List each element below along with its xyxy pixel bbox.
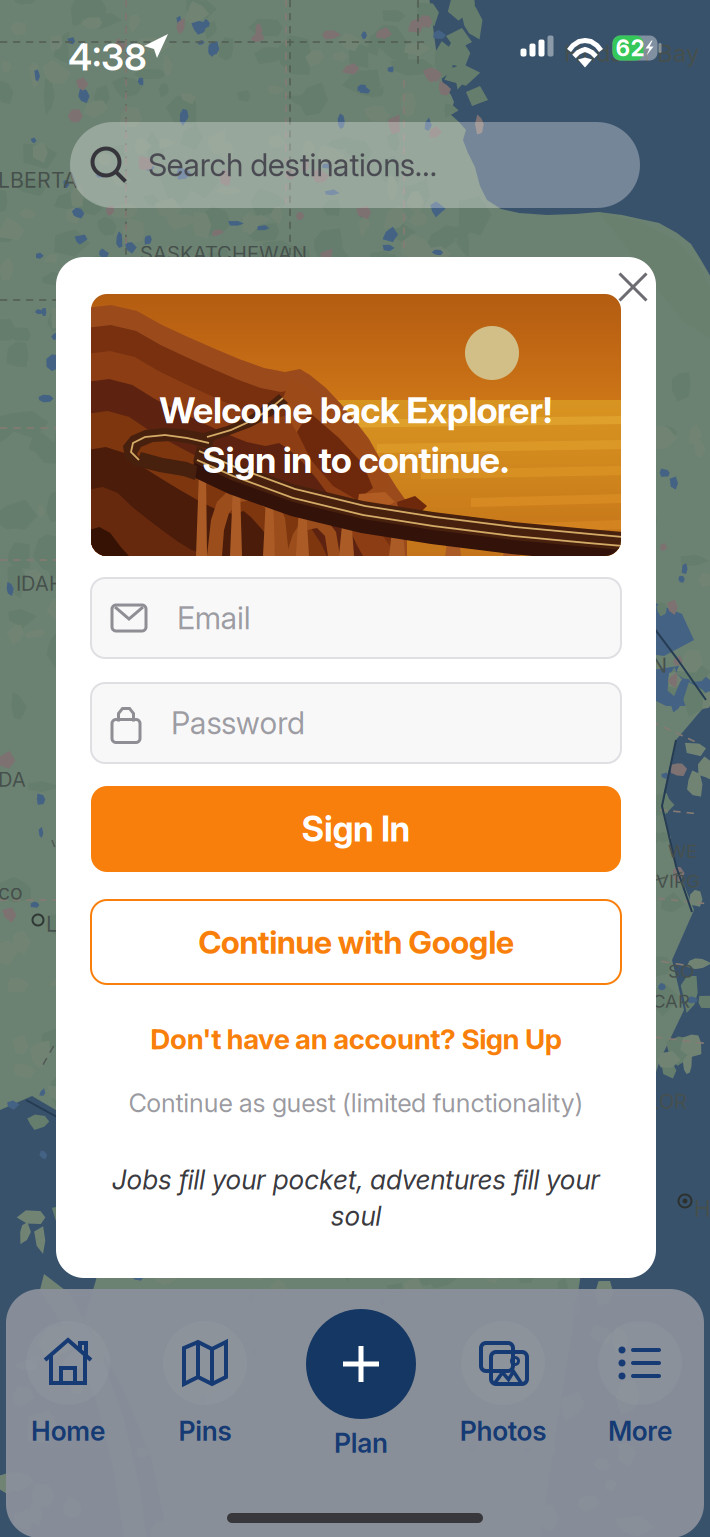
staticText: WE <box>668 840 697 862</box>
staticText: La <box>46 911 70 937</box>
staticText: Photos <box>460 1415 546 1447</box>
staticText: SASKATCHEWAN <box>140 241 307 266</box>
staticText: 62 <box>615 34 644 62</box>
staticText: Sign In <box>301 808 410 850</box>
staticText: soul <box>331 1200 381 1232</box>
staticText: FLOR <box>636 1089 687 1114</box>
button[interactable]: Home <box>1 1289 135 1419</box>
button[interactable]: Close <box>603 257 663 317</box>
staticText: Plan <box>334 1427 388 1459</box>
staticText: OHIO <box>604 767 654 792</box>
staticText: Don't have an account? Sign Up <box>150 1022 562 1056</box>
staticText: Pins <box>178 1415 231 1447</box>
staticText: Continue as guest (limited functionality… <box>128 1088 583 1118</box>
button[interactable]: Search destinations... <box>70 122 640 208</box>
staticText: Continue with Google <box>198 923 514 961</box>
button[interactable]: More <box>573 1289 707 1419</box>
staticText: Hudson Bay <box>564 38 699 67</box>
staticText: CAR <box>652 990 690 1012</box>
staticText: Home <box>31 1415 105 1447</box>
staticText: 4:38 <box>68 34 147 80</box>
staticText: Welcome back Explorer! <box>159 388 553 432</box>
staticText: Jobs fill your pocket, adventures fill y… <box>112 1164 600 1196</box>
button[interactable]: Don't have an account? Sign Up <box>91 1017 621 1061</box>
staticText: LBERTA <box>0 167 78 193</box>
staticText: SO <box>668 960 694 982</box>
staticText: Password <box>171 704 305 741</box>
staticText: H <box>694 1195 710 1222</box>
staticText: Search destinations... <box>148 146 438 183</box>
button[interactable]: Continue with Google <box>91 900 621 984</box>
staticText: DA <box>0 767 26 792</box>
button[interactable]: Sign In <box>91 786 621 872</box>
staticText: Email <box>177 599 251 636</box>
button[interactable]: Plan <box>306 1289 416 1439</box>
staticText: Sign in to continue. <box>202 438 510 482</box>
button[interactable]: Password <box>91 683 621 763</box>
staticText: VIRG <box>656 870 700 892</box>
button[interactable]: Continue as guest (limited functionality… <box>91 1082 621 1124</box>
button[interactable]: Pins <box>138 1289 272 1419</box>
staticText: AN <box>638 653 667 678</box>
staticText: co <box>0 879 23 905</box>
button[interactable]: Photos <box>436 1289 570 1419</box>
staticText: IDAHO <box>16 571 79 596</box>
button[interactable]: Email <box>91 578 621 658</box>
staticText: More <box>608 1415 672 1447</box>
